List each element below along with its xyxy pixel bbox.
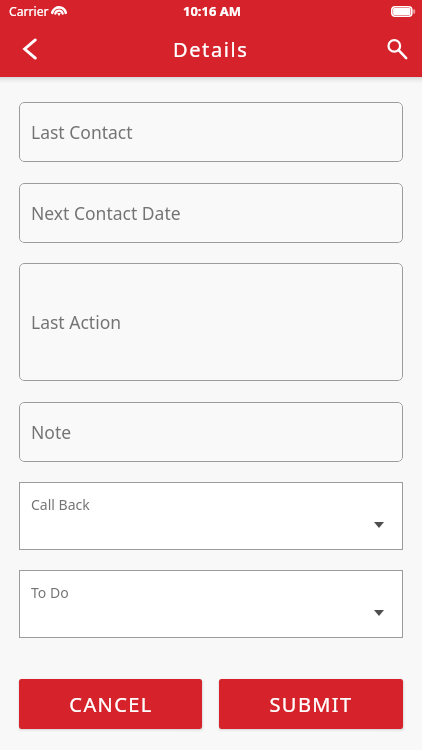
button[interactable]: SUBMIT [219, 679, 403, 729]
button[interactable]: CANCEL [19, 679, 202, 729]
staticText: Next Contact Date [31, 201, 181, 225]
staticText: To Do [31, 583, 69, 602]
staticText: Last Contact [31, 120, 133, 144]
button[interactable]: Next Contact Date [19, 183, 403, 243]
staticText: Details [173, 36, 249, 63]
staticText: Call Back [31, 495, 90, 514]
button[interactable]: Note [19, 402, 403, 462]
button[interactable]: Last Action [19, 263, 403, 381]
button[interactable]: To Do [19, 570, 403, 638]
staticText: Note [31, 420, 72, 444]
staticText: 10:16 AM [183, 2, 242, 20]
button[interactable]: Call Back [19, 482, 403, 550]
staticText: SUBMIT [269, 691, 353, 718]
staticText: Carrier [9, 3, 49, 20]
button[interactable]: Search [376, 29, 418, 71]
staticText: CANCEL [69, 691, 153, 718]
button[interactable]: Back [9, 29, 51, 71]
staticText: Last Action [31, 310, 122, 334]
button[interactable]: Last Contact [19, 102, 403, 162]
